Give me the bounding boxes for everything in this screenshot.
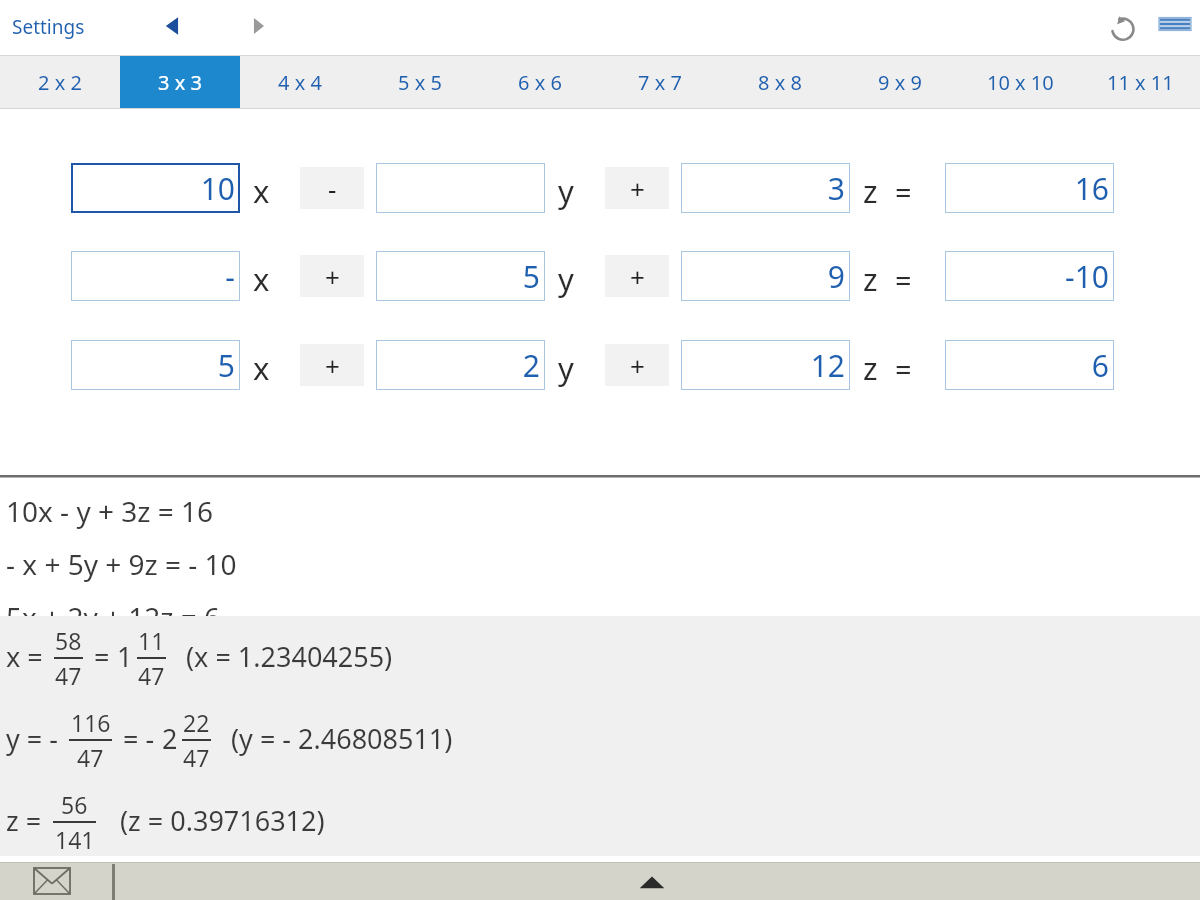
staticText: y = - [6, 720, 65, 757]
staticText: z [863, 347, 878, 389]
button[interactable]: 6 x 6 [480, 56, 600, 108]
staticText: 11 [138, 625, 165, 656]
staticText: 22 [183, 707, 210, 738]
staticText: 16 [1074, 168, 1109, 209]
staticText: - x + 5y + 9z = - 10 [6, 545, 237, 583]
staticText: 12 [810, 345, 845, 386]
staticText: (z = 0.39716312) [120, 802, 325, 839]
staticText: = [87, 638, 117, 675]
staticText: x [253, 258, 270, 300]
staticText: 3 x 3 [158, 69, 202, 96]
staticText: y [558, 258, 574, 300]
staticText: y [558, 347, 574, 389]
button[interactable]: - [71, 251, 240, 301]
button[interactable]: 8 x 8 [720, 56, 840, 108]
button[interactable]: 10 x 10 [960, 56, 1080, 108]
button[interactable]: 5 [376, 251, 545, 301]
button[interactable]: 5 [71, 340, 240, 390]
button[interactable]: Undo [1100, 6, 1144, 46]
button[interactable]: - [300, 167, 364, 209]
staticText: + [630, 259, 645, 294]
staticText: = - [116, 720, 162, 757]
staticText: 47 [77, 742, 104, 769]
staticText: 8 x 8 [758, 69, 802, 96]
staticText: 6 [1091, 345, 1109, 386]
button[interactable]: Show keyboard [630, 870, 674, 896]
staticText: 56 [61, 789, 88, 820]
staticText: = [895, 172, 912, 211]
staticText: 10 x 10 [987, 69, 1054, 96]
staticText: z [863, 258, 878, 300]
staticText: + [325, 348, 340, 383]
staticText: 10 [200, 168, 235, 209]
button[interactable]: 16 [945, 163, 1114, 213]
staticText: 141 [55, 824, 95, 851]
staticText: (x = 1.23404255) [186, 638, 393, 675]
staticText: 3 [827, 168, 845, 209]
staticText: + [325, 259, 340, 294]
staticText: 9 [827, 256, 845, 297]
staticText: z [863, 170, 878, 212]
staticText: -10 [1065, 256, 1109, 297]
button[interactable] [376, 163, 545, 213]
button[interactable]: + [605, 344, 669, 386]
button[interactable]: 3 [681, 163, 850, 213]
button[interactable]: 9 x 9 [840, 56, 960, 108]
staticText: - [328, 171, 337, 206]
staticText: 11 x 11 [1107, 69, 1174, 96]
button[interactable]: 12 [681, 340, 850, 390]
staticText: Settings [12, 14, 85, 40]
staticText: 7 x 7 [638, 69, 682, 96]
button[interactable]: 10 [71, 163, 240, 213]
button[interactable]: 3 x 3 [120, 56, 240, 108]
staticText: 2 [162, 720, 178, 757]
staticText: - [225, 256, 235, 297]
button[interactable]: + [605, 167, 669, 209]
button[interactable]: Previous [152, 8, 194, 44]
button[interactable]: Mail [34, 868, 70, 894]
button[interactable]: Settings [6, 10, 91, 44]
button[interactable]: 2 x 2 [0, 56, 120, 108]
staticText: 2 [522, 345, 540, 386]
staticText: 10x - y + 3z = 16 [6, 492, 214, 530]
staticText: 9 x 9 [878, 69, 922, 96]
staticText: 1 [117, 638, 133, 675]
button[interactable]: 6 [945, 340, 1114, 390]
staticText: 47 [55, 660, 82, 687]
staticText: z = [6, 802, 49, 839]
staticText: 6 x 6 [518, 69, 562, 96]
staticText: 2 x 2 [38, 69, 82, 96]
staticText: x [253, 347, 270, 389]
button[interactable]: 7 x 7 [600, 56, 720, 108]
button[interactable]: Menu [1156, 8, 1194, 40]
staticText: x [253, 170, 270, 212]
staticText: 5 x 5 [398, 69, 442, 96]
button[interactable]: 2 [376, 340, 545, 390]
button[interactable]: Next [238, 8, 280, 44]
staticText: 58 [55, 625, 82, 656]
staticText: x = [6, 638, 50, 675]
staticText: y [558, 170, 574, 212]
staticText: 47 [183, 742, 210, 769]
staticText: 47 [138, 660, 165, 687]
staticText: = [895, 260, 912, 299]
staticText: 5 [522, 256, 540, 297]
button[interactable]: + [300, 344, 364, 386]
button[interactable]: 5 x 5 [360, 56, 480, 108]
staticText: 116 [71, 707, 111, 738]
staticText: + [630, 348, 645, 383]
button[interactable]: 4 x 4 [240, 56, 360, 108]
button[interactable]: 9 [681, 251, 850, 301]
button[interactable]: -10 [945, 251, 1114, 301]
button[interactable]: + [605, 255, 669, 297]
staticText: + [630, 171, 645, 206]
staticText: 4 x 4 [278, 69, 322, 96]
button[interactable]: 11 x 11 [1080, 56, 1200, 108]
staticText: (y = - 2.46808511) [231, 720, 453, 757]
staticText: 5 [217, 345, 235, 386]
staticText: = [895, 349, 912, 388]
staticText: 5x + 2y + 12z = 6 [6, 598, 221, 636]
button[interactable]: + [300, 255, 364, 297]
